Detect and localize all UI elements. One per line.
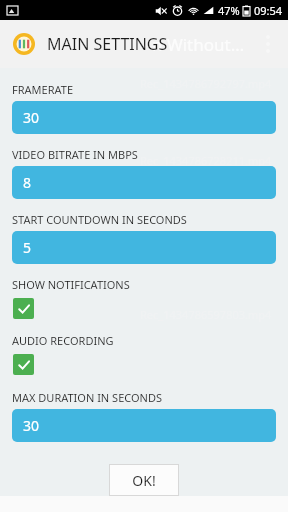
staticText: 09:54 xyxy=(254,3,283,18)
staticText: 8 xyxy=(23,173,32,192)
staticText: START COUNTDOWN IN SECONDS xyxy=(12,212,187,227)
staticText: n Without… xyxy=(152,33,245,56)
staticText: Rec_1434786692691.mp4 xyxy=(140,230,272,245)
button[interactable]: Checked xyxy=(13,354,34,375)
staticText: VIDEO BITRATE IN MBPS xyxy=(12,147,138,162)
button[interactable]: 5 xyxy=(12,231,276,264)
staticText: FRAMERATE xyxy=(12,82,74,97)
button[interactable]: Checked xyxy=(13,298,34,319)
button[interactable]: 30 xyxy=(12,101,276,134)
staticText: 5 xyxy=(23,238,32,257)
staticText: 30 xyxy=(23,108,40,127)
staticText: AUDIO RECORDING xyxy=(12,333,114,348)
button[interactable]: OK! xyxy=(109,464,179,496)
staticText: OK! xyxy=(132,471,156,490)
staticText: 47% xyxy=(218,3,240,18)
staticText: 30 xyxy=(23,416,40,435)
staticText: Rec_1434786728211.mp4 xyxy=(140,153,272,168)
staticText: MAX DURATION IN SECONDS xyxy=(12,390,162,405)
staticText: SHOW NOTIFICATIONS xyxy=(12,277,130,292)
button[interactable]: 30 xyxy=(12,409,276,442)
button[interactable]: 8 xyxy=(12,166,276,199)
staticText: MAIN SETTINGS xyxy=(47,33,168,55)
